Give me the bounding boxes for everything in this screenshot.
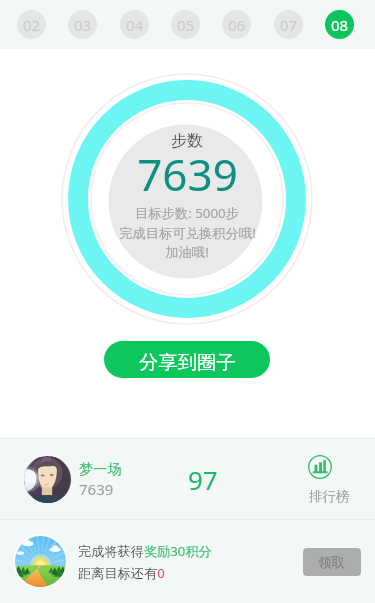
staticText: 06 (228, 15, 246, 35)
button[interactable]: 08 (325, 10, 354, 39)
button[interactable]: 06 (222, 10, 251, 39)
button[interactable]: 04 (120, 10, 149, 39)
button[interactable]: 排行榜 (301, 439, 357, 519)
staticText: 97 (188, 462, 218, 497)
button[interactable]: 03 (68, 10, 97, 39)
staticText: 完成目标可兑换积分哦! (119, 224, 256, 242)
staticText: 距离目标还有0 (78, 564, 165, 582)
button[interactable]: 分享到圈子 (104, 341, 270, 378)
staticText: 分享到圈子 (139, 350, 236, 374)
staticText: 目标步数: 5000步 (135, 204, 239, 222)
button[interactable]: 05 (171, 10, 200, 39)
staticText: 05 (177, 15, 195, 35)
staticText: 08 (331, 15, 349, 35)
staticText: 梦一场 (79, 460, 122, 478)
staticText: 领取 (318, 554, 346, 571)
staticText: 加油哦! (165, 243, 209, 261)
staticText: 完成将获得奖励30积分 (78, 542, 212, 560)
staticText: 7639 (137, 144, 238, 204)
staticText: 02 (23, 15, 41, 35)
staticText: 排行榜 (309, 488, 350, 505)
button[interactable]: 领取 (303, 548, 361, 576)
staticText: 03 (74, 15, 92, 35)
staticText: 步数 (171, 131, 203, 151)
staticText: 07 (280, 15, 298, 35)
button[interactable]: 梦一场 (0, 439, 375, 519)
staticText: 04 (126, 15, 144, 35)
button[interactable]: 07 (274, 10, 303, 39)
button[interactable]: 02 (17, 10, 46, 39)
staticText: 7639 (79, 479, 114, 499)
